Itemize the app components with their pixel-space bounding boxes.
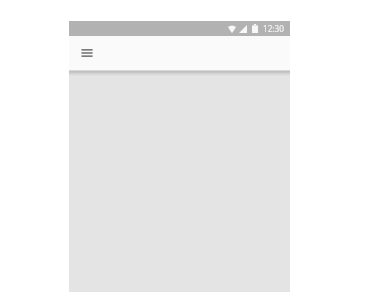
button[interactable]: Open navigation drawer <box>75 41 99 65</box>
staticText: 12:30 <box>263 23 284 34</box>
